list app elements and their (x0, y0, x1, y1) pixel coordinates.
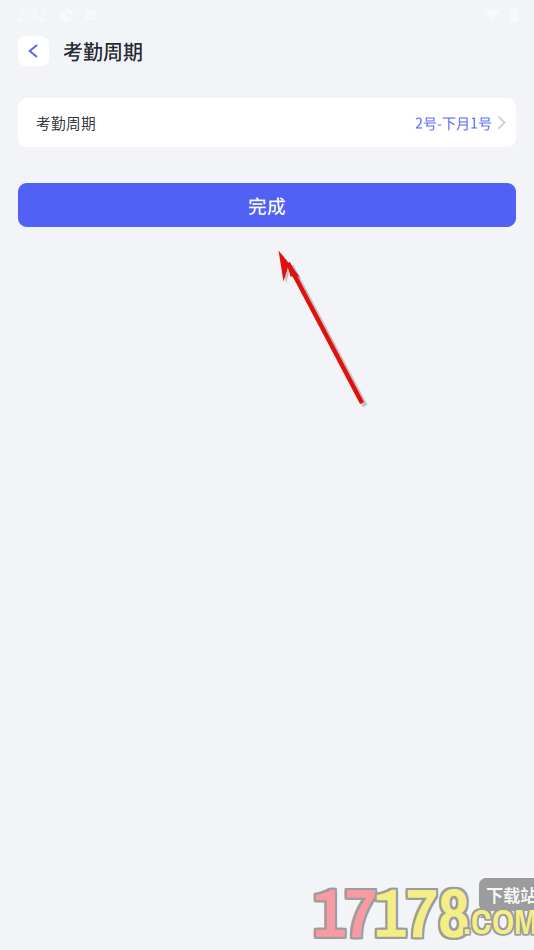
button[interactable]: Back (18, 36, 49, 66)
staticText: 17 (311, 867, 375, 950)
staticText: .COM (461, 896, 534, 943)
button[interactable]: 完成 (18, 183, 516, 227)
staticText: 17 (315, 863, 379, 950)
staticText: 178 (376, 865, 472, 950)
staticText: 完成 (248, 191, 286, 218)
staticText: 178 (374, 865, 470, 950)
staticText: 178 (374, 867, 470, 950)
staticText: 17 (313, 863, 377, 950)
staticText: 17 (313, 867, 377, 950)
staticText: .COM (463, 900, 534, 946)
staticText: 178 (372, 863, 468, 950)
staticText: 考勤周期 (63, 36, 143, 65)
staticText: .COM (463, 896, 534, 943)
staticText: 17 (315, 865, 379, 950)
staticText: 考勤周期 (36, 112, 96, 133)
staticText: .COM (465, 898, 534, 945)
staticText: 2号-下月1号 (415, 112, 492, 133)
staticText: 178 (376, 867, 472, 950)
staticText: 17 (311, 865, 375, 950)
staticText: .COM (463, 898, 534, 945)
staticText: 178 (376, 863, 472, 950)
staticText: .COM (465, 900, 534, 946)
staticText: 17 (313, 865, 377, 950)
staticText: 178 (374, 863, 470, 950)
staticText: 178 (372, 865, 468, 950)
staticText: .COM (465, 896, 534, 943)
staticText: 17 (315, 867, 379, 950)
staticText: 下载站 (486, 882, 534, 907)
staticText: 17 (311, 863, 375, 950)
staticText: .COM (461, 898, 534, 945)
staticText: 178 (372, 867, 468, 950)
button[interactable]: 考勤周期 (18, 98, 516, 147)
staticText: .COM (461, 900, 534, 946)
